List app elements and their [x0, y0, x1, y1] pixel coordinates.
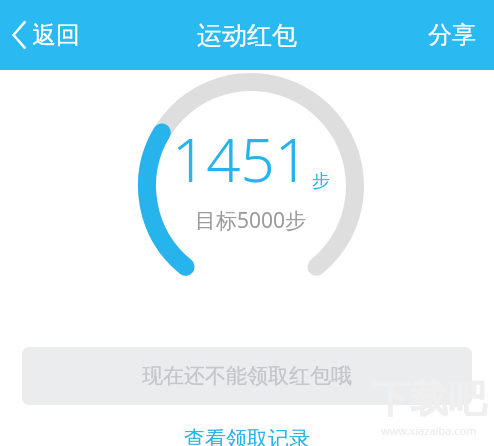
staticText: 现在还不能领取红包哦 — [142, 363, 352, 389]
button[interactable]: 分享 — [410, 8, 494, 62]
staticText: 查看领取记录 — [184, 426, 310, 446]
staticText: 1451 — [172, 118, 310, 200]
button[interactable]: 查看领取记录 — [170, 424, 324, 446]
staticText: 返回 — [32, 20, 80, 50]
button[interactable]: 返回 — [0, 10, 96, 60]
staticText: 下载吧 — [372, 375, 486, 423]
staticText: www.xiazaiba.com — [381, 423, 477, 438]
button[interactable]: 现在还不能领取红包哦 — [22, 347, 472, 405]
staticText: 步 — [312, 170, 330, 193]
staticText: 运动红包 — [197, 20, 297, 51]
staticText: 目标5000步 — [195, 206, 307, 235]
staticText: 分享 — [428, 20, 476, 50]
